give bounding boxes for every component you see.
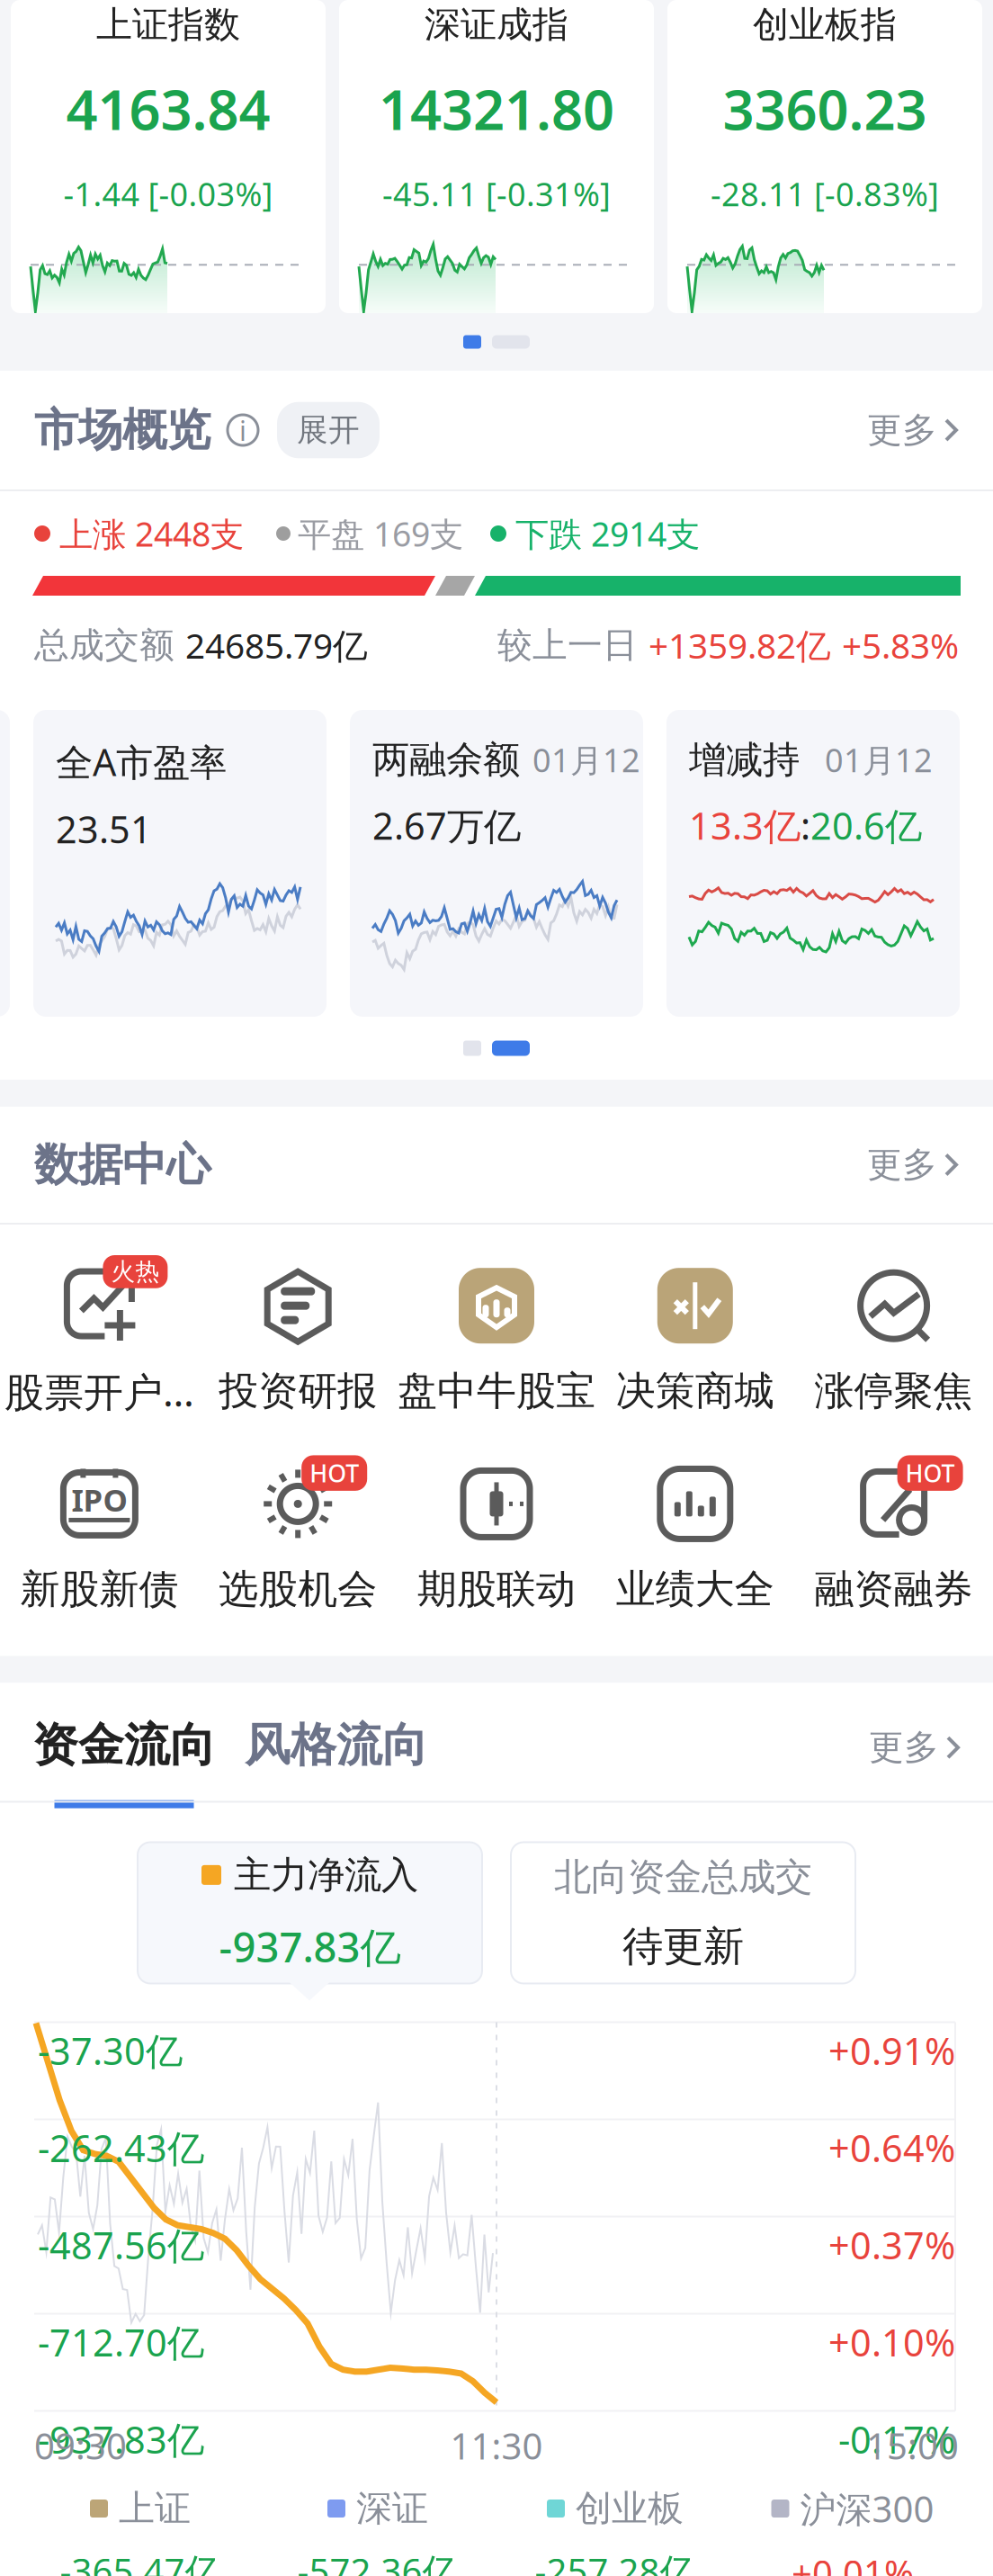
button[interactable]: 全A市盈率 (33, 710, 327, 1017)
staticText: 09:30 (34, 2422, 127, 2469)
staticText: 3360.23 (723, 72, 927, 145)
button[interactable]: 风格流向 (245, 1717, 428, 1773)
button[interactable]: 更多 (858, 400, 959, 460)
staticText: IPO (71, 1479, 127, 1520)
staticText: 深证 (356, 2486, 428, 2531)
staticText: 沪深300 (800, 2485, 934, 2532)
staticText: 盘中牛股宝 (398, 1367, 595, 1415)
staticText: 23.51 (56, 804, 152, 854)
staticText: 展开 (297, 411, 360, 449)
button[interactable]: 上证指数 (11, 0, 326, 313)
button[interactable]: 展开 (277, 402, 380, 458)
button[interactable]: 火热 (0, 1259, 199, 1421)
staticText: HOT (905, 1457, 955, 1489)
staticText: 两融余额 (372, 737, 520, 783)
button[interactable]: 期股联动 (397, 1459, 596, 1617)
button[interactable]: 增减持 (666, 710, 960, 1017)
staticText: +0.01% (792, 2549, 914, 2576)
staticText: +0.64% (828, 2123, 955, 2172)
staticText: -487.56亿 (38, 2220, 204, 2270)
staticText: 创业板指 (753, 3, 897, 47)
button[interactable]: 说明 (225, 412, 261, 448)
staticText: +1359.82亿 (649, 622, 842, 668)
staticText: 15:00 (866, 2422, 959, 2469)
staticText: 24685.79亿 (185, 622, 368, 668)
staticText: 01月12 (532, 738, 640, 781)
button[interactable]: 创业板指 (667, 0, 982, 313)
staticText: 较上一日 (497, 624, 649, 667)
staticText: 投资研报 (219, 1367, 377, 1415)
staticText: -45.11 [-0.31%] (382, 172, 611, 215)
staticText: : (801, 801, 810, 850)
staticText: -257.28亿 (535, 2547, 696, 2576)
staticText: -365.47亿 (60, 2547, 221, 2576)
staticText: 全A市盈率 (56, 737, 227, 786)
staticText: -937.83亿 (38, 2414, 204, 2464)
staticText: 11:30 (450, 2422, 543, 2469)
staticText: 总成交额 (34, 624, 185, 667)
staticText: 上证 (119, 2486, 191, 2531)
button[interactable]: 两融余额 (350, 710, 643, 1017)
staticText: 增减持 (689, 737, 800, 783)
staticText: +0.10% (828, 2317, 955, 2367)
button[interactable]: 决策商城 (596, 1261, 794, 1419)
staticText: 股票开户… (4, 1365, 194, 1417)
staticText: +5.83% (842, 622, 959, 668)
button[interactable]: IPO (0, 1459, 199, 1617)
staticText: 决策商城 (616, 1367, 774, 1415)
staticText: 期股联动 (417, 1565, 576, 1614)
staticText: 资金流向 (32, 1717, 216, 1773)
button[interactable]: 更多 (860, 1717, 961, 1778)
staticText: 市场概览 (34, 403, 210, 457)
staticText: -1.44 [-0.03%] (63, 172, 273, 215)
staticText: 14321.80 (379, 72, 614, 145)
button[interactable]: 盘中牛股宝 (397, 1261, 596, 1419)
button[interactable]: 资金流向 (32, 1717, 216, 1808)
staticText: 风格流向 (245, 1717, 428, 1773)
staticText: 新股新债 (20, 1565, 178, 1614)
staticText: 业绩大全 (616, 1565, 774, 1614)
button[interactable]: 深证成指 (339, 0, 654, 313)
button[interactable]: 主力净流入 (138, 1842, 482, 1984)
staticText: 更多 (867, 409, 937, 451)
staticText: 火热 (111, 1257, 160, 1286)
staticText: 待更新 (622, 1921, 744, 1972)
staticText: 更多 (867, 1143, 937, 1186)
staticText: 上涨 2448支 (59, 511, 244, 556)
staticText: 2.67万亿 (372, 801, 521, 850)
staticText: +0.37% (828, 2220, 955, 2270)
staticText: 更多 (869, 1726, 939, 1769)
button[interactable]: 更多 (858, 1134, 959, 1195)
staticText: 主力净流入 (234, 1852, 418, 1898)
staticText: -37.30亿 (38, 2026, 183, 2075)
staticText: 深证成指 (425, 3, 568, 47)
staticText: 平盘 169支 (298, 511, 463, 556)
button[interactable]: 北向资金总成交 (511, 1842, 855, 1984)
button[interactable]: 涨停聚焦 (794, 1261, 993, 1419)
staticText: 选股机会 (219, 1565, 377, 1614)
staticText: -262.43亿 (38, 2123, 204, 2172)
staticText: -28.11 [-0.83%] (711, 172, 939, 215)
button[interactable]: 投资研报 (199, 1261, 397, 1419)
staticText: 13.3亿 (689, 801, 801, 850)
staticText: 上证指数 (96, 3, 240, 47)
staticText: 创业板 (576, 2486, 684, 2531)
staticText: 数据中心 (34, 1137, 210, 1192)
staticText: HOT (310, 1457, 359, 1489)
button[interactable]: 业绩大全 (596, 1459, 794, 1617)
staticText: +0.91% (828, 2026, 955, 2075)
button[interactable]: HOT (199, 1459, 397, 1617)
staticText: -712.70亿 (38, 2317, 204, 2367)
staticText: 北向资金总成交 (554, 1854, 812, 1900)
staticText: 下跌 2914支 (515, 511, 700, 556)
staticText: -0.17% (838, 2414, 955, 2464)
staticText: -572.36亿 (297, 2547, 458, 2576)
staticText: 01月12 (825, 738, 933, 781)
staticText: 融资融券 (815, 1565, 973, 1614)
staticText: i (239, 412, 246, 448)
staticText: 涨停聚焦 (815, 1367, 973, 1415)
staticText: 20.6亿 (810, 801, 922, 850)
staticText: -937.83亿 (219, 1919, 401, 1974)
staticText: 4163.84 (66, 72, 270, 145)
button[interactable]: HOT (794, 1459, 993, 1617)
